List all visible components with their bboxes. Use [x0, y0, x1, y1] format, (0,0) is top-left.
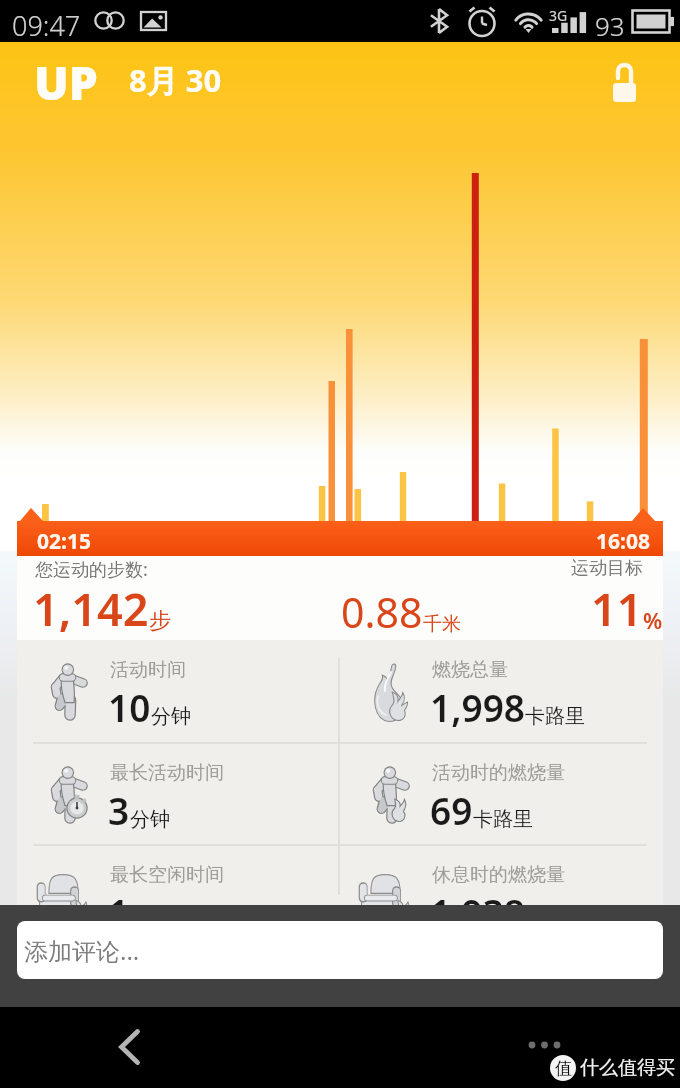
- staticText: 0.88: [341, 584, 423, 640]
- staticText: 16:08: [596, 527, 650, 556]
- staticText: 11: [591, 578, 643, 639]
- staticText: 3: [108, 785, 130, 835]
- staticText: 千米: [423, 612, 461, 636]
- staticText: 卡路里: [525, 704, 585, 729]
- staticText: 最长空闲时间: [110, 863, 224, 887]
- button[interactable]: 您运动的步数:: [17, 556, 663, 640]
- staticText: 09:47: [12, 7, 81, 44]
- staticText: 1,998: [430, 682, 525, 732]
- button[interactable]: 休息时的燃烧量: [339, 845, 661, 947]
- staticText: 41: [130, 907, 153, 934]
- staticText: 1,142: [33, 578, 149, 639]
- staticText: 步: [149, 607, 171, 635]
- staticText: 10: [108, 682, 151, 732]
- staticText: 运动目标: [571, 557, 643, 580]
- button[interactable]: 最长空闲时间: [17, 845, 339, 947]
- button[interactable]: More options: [516, 1027, 588, 1067]
- button[interactable]: 活动时间: [17, 640, 339, 742]
- button[interactable]: 最长活动时间: [17, 743, 339, 845]
- staticText: UP: [34, 51, 98, 114]
- staticText: 活动时的燃烧量: [432, 761, 565, 785]
- staticText: 添加评论...: [24, 934, 140, 967]
- button[interactable]: Unlock: [589, 42, 661, 122]
- button[interactable]: Back: [98, 1016, 160, 1078]
- staticText: 卡路里: [473, 807, 533, 832]
- staticText: %: [643, 605, 663, 635]
- button[interactable]: 添加评论...: [17, 921, 663, 979]
- staticText: 02:15: [37, 527, 91, 556]
- staticText: 3G: [549, 6, 568, 25]
- staticText: 1: [108, 887, 130, 937]
- staticText: 分钟: [151, 704, 191, 729]
- staticText: 休息时的燃烧量: [432, 863, 565, 887]
- staticText: 什么值得买: [580, 1056, 675, 1080]
- staticText: 分钟: [130, 807, 170, 832]
- staticText: 93: [595, 8, 625, 43]
- button[interactable]: 燃烧总量: [339, 640, 661, 742]
- staticText: 您运动的步数:: [35, 557, 148, 582]
- staticText: 燃烧总量: [432, 658, 508, 682]
- staticText: 8月 30: [129, 59, 222, 101]
- staticText: 卡路里: [525, 909, 585, 934]
- staticText: 最长活动时间: [110, 761, 224, 785]
- staticText: 活动时间: [110, 658, 186, 682]
- staticText: 1,938: [430, 887, 525, 937]
- staticText: 69: [430, 785, 473, 835]
- staticText: 值: [555, 1058, 572, 1079]
- button[interactable]: 活动时的燃烧量: [339, 743, 661, 845]
